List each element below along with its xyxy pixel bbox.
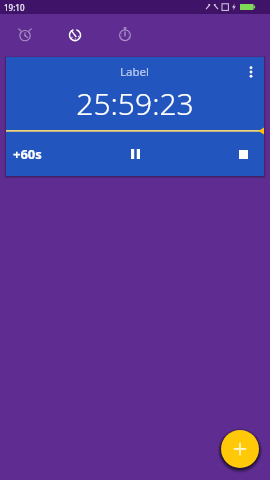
button[interactable]: Alarms — [0, 14, 50, 54]
staticText: +60s — [13, 145, 42, 163]
staticText: Label — [120, 64, 150, 80]
button[interactable]: Timers — [100, 14, 150, 54]
button[interactable]: Pause — [118, 137, 152, 171]
button[interactable]: Stopwatch — [50, 14, 100, 54]
button[interactable]: Add timer — [221, 430, 259, 468]
staticText: 19:10 — [4, 2, 25, 13]
button[interactable]: +60s — [6, 137, 74, 171]
button[interactable]: More options — [240, 61, 262, 83]
button[interactable]: Stop — [226, 137, 260, 171]
staticText: 25:59:23 — [76, 83, 194, 124]
